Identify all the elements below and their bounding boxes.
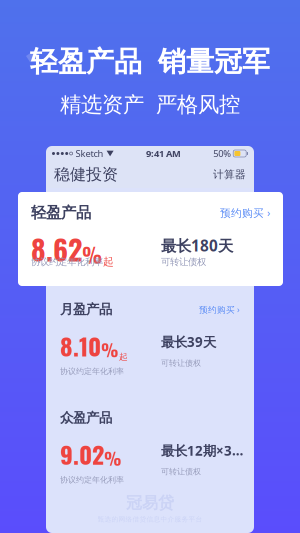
staticText: 9:41 AM — [146, 147, 181, 160]
button[interactable]: 众盈产品 — [46, 409, 254, 485]
staticText: 最长180天 — [161, 235, 233, 256]
staticText: 50% — [213, 147, 231, 160]
staticText: 协议约定年化利率 — [60, 366, 124, 376]
staticText: % — [101, 337, 118, 362]
staticText: % — [104, 445, 121, 471]
staticText: 最长39天 — [161, 333, 216, 351]
staticText: 预约购买 › — [220, 205, 270, 220]
staticText: 最长12期×30天 — [161, 441, 247, 459]
staticText: 可转让债权 — [161, 358, 201, 368]
staticText: 甄选的网络借贷信息中介服务平台 — [97, 515, 202, 523]
staticText: 轻盈产品 — [31, 203, 91, 222]
staticText: 计算器 — [213, 168, 246, 181]
staticText: % — [82, 240, 102, 269]
staticText: Sketch — [76, 147, 104, 160]
staticText: 可转让债权 — [161, 256, 206, 268]
button[interactable]: 计算器 — [213, 168, 246, 181]
staticText: 月盈产品 — [60, 301, 112, 318]
staticText: 可转让债权 — [161, 467, 201, 477]
staticText: 8.62 — [31, 228, 82, 269]
staticText: 轻盈产品 销量冠军 — [30, 44, 270, 79]
staticText: 起 — [103, 255, 114, 268]
staticText: 8.10 — [60, 328, 101, 363]
staticText: 冠易贷 — [126, 493, 174, 513]
staticText: 起 — [119, 351, 128, 362]
staticText: 预约购买 › — [199, 303, 240, 315]
staticText: 精选资产 严格风控 — [60, 91, 240, 118]
button[interactable]: 轻盈产品 — [18, 192, 283, 286]
staticText: 协议约定年化利率 — [60, 475, 124, 485]
staticText: 众盈产品 — [60, 409, 112, 426]
staticText: 稳健投资 — [54, 164, 118, 185]
staticText: 协议约定年化利率 — [31, 256, 103, 268]
staticText: 9.02 — [60, 436, 104, 472]
button[interactable]: 月盈产品 — [46, 301, 254, 376]
